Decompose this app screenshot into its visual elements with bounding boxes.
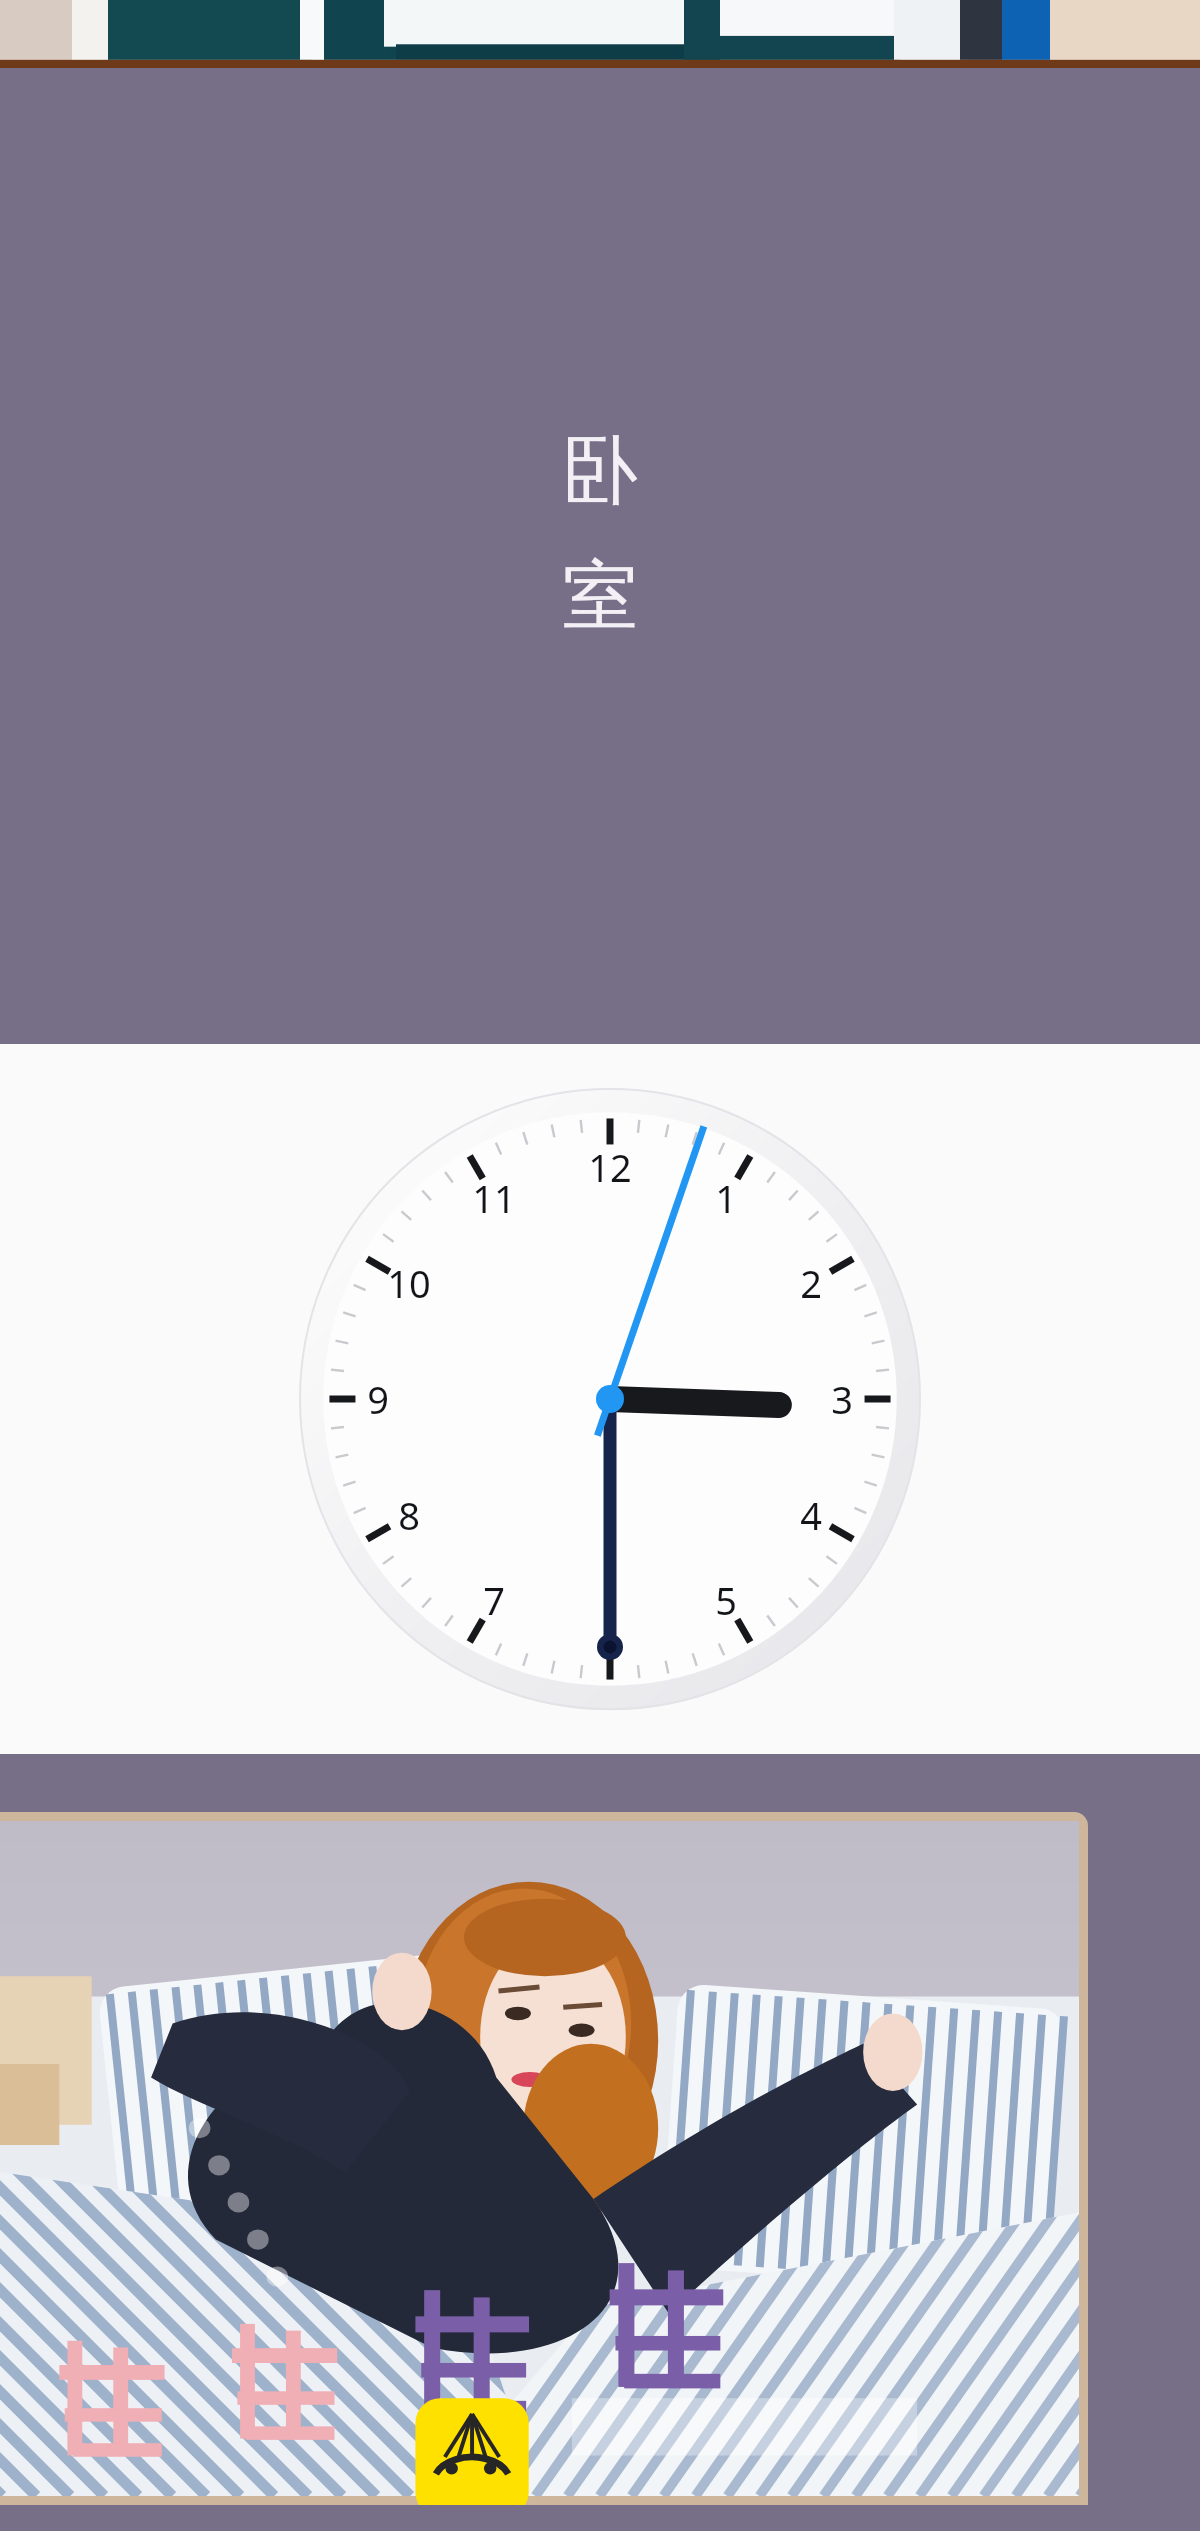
staticText: 7 (483, 1574, 505, 1626)
button[interactable]: Wall clock (0, 1044, 1200, 1754)
staticText: 4 (800, 1489, 822, 1541)
staticText: 3 (831, 1373, 853, 1425)
staticText: 卧 (562, 423, 638, 519)
staticText: 10 (387, 1257, 431, 1309)
button[interactable]: Bedroom photo (0, 1821, 1079, 2496)
staticText: 9 (367, 1373, 389, 1425)
staticText: 11 (472, 1172, 516, 1224)
staticText: 室 (562, 549, 638, 645)
staticText: 12 (588, 1141, 632, 1193)
staticText: 1 (715, 1172, 737, 1224)
staticText: 2 (800, 1257, 822, 1309)
staticText: 5 (715, 1574, 737, 1626)
staticText: 8 (398, 1489, 420, 1541)
